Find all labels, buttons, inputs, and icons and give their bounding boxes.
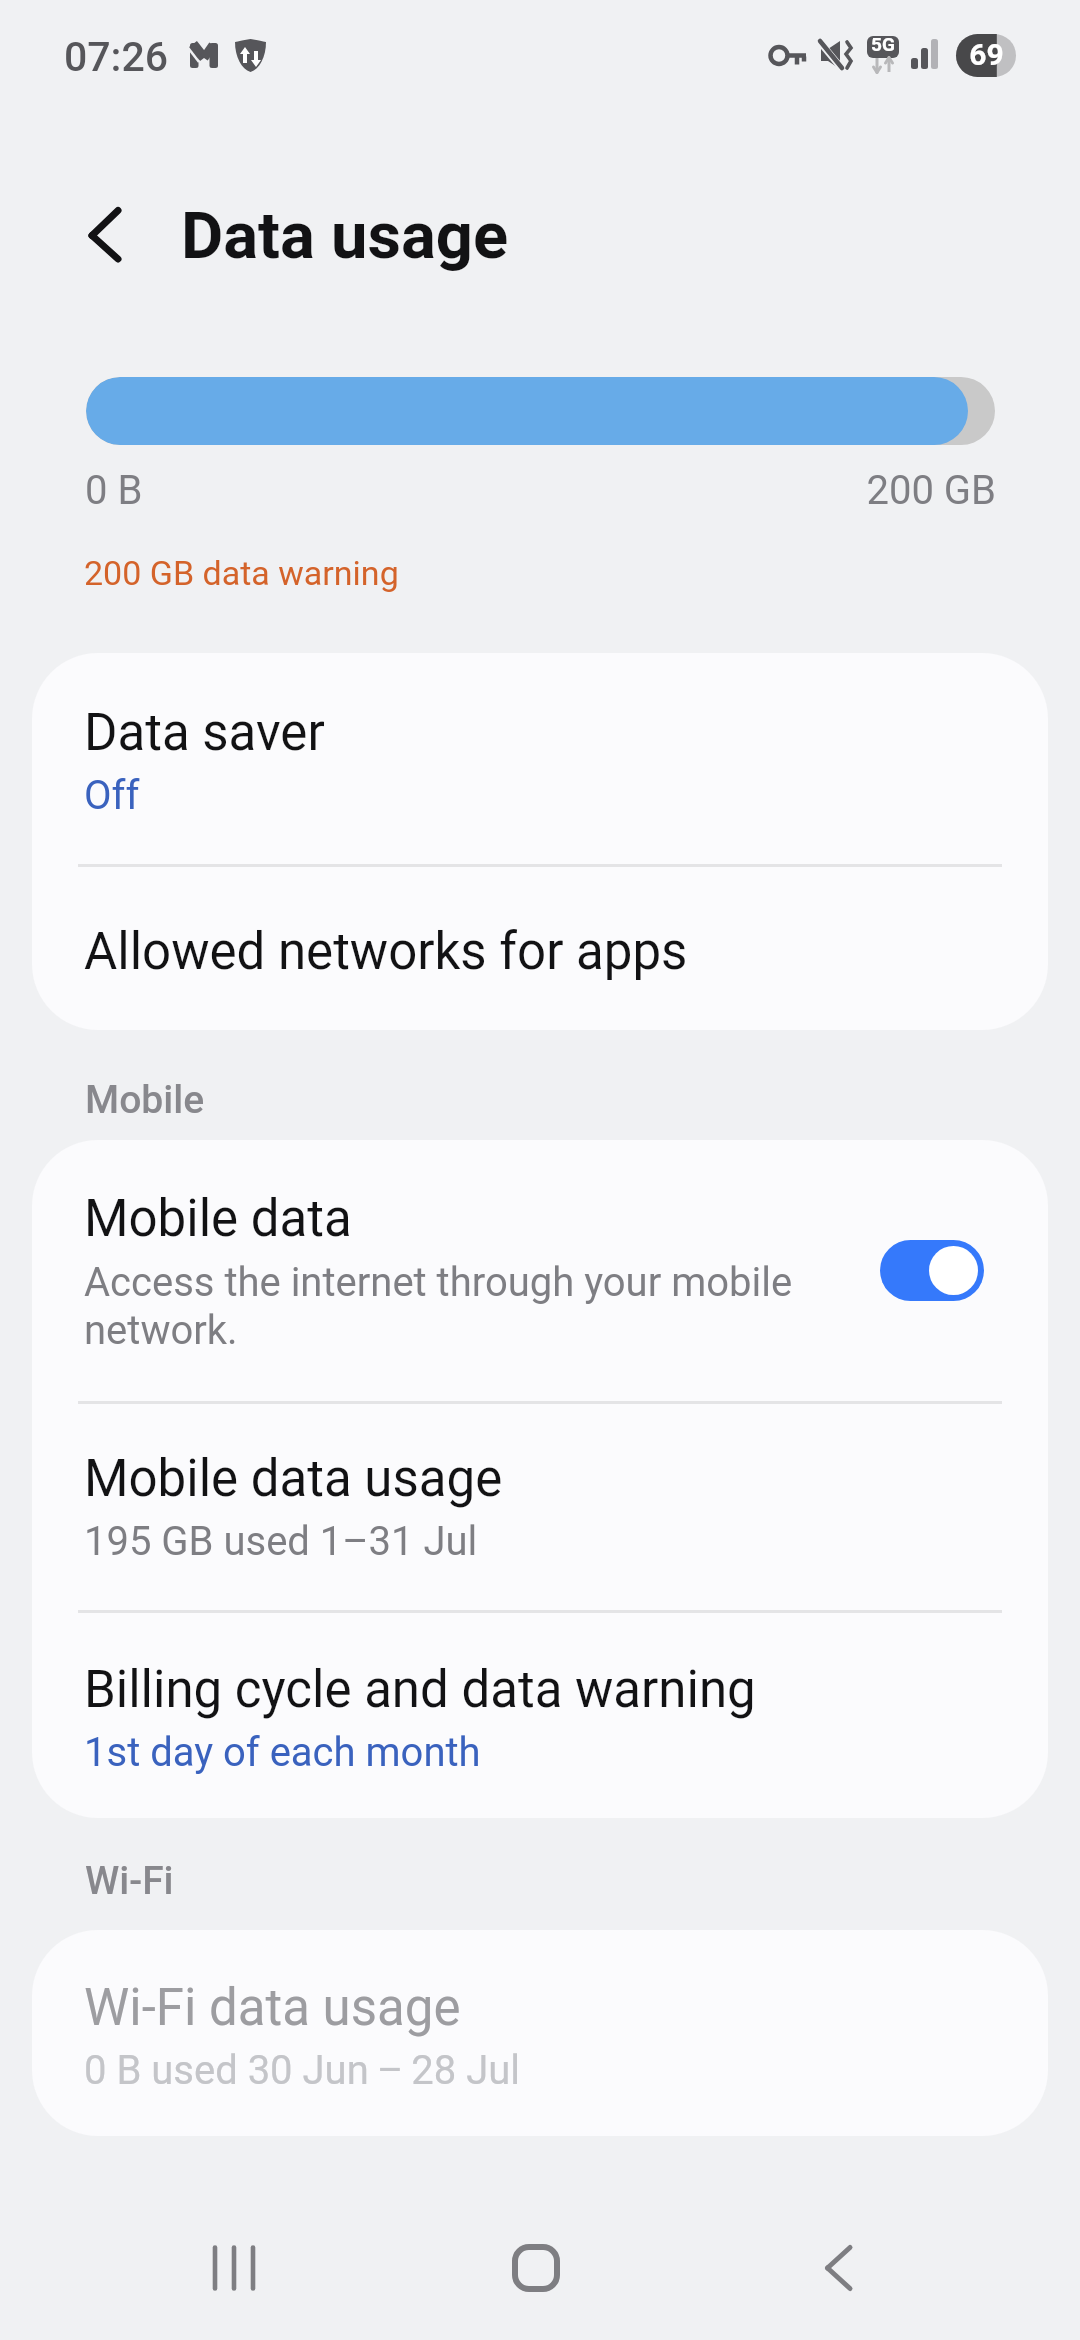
staticText: Access the internet through your mobile … — [84, 1259, 793, 1354]
staticText: 200 GB — [0, 467, 996, 514]
button[interactable]: Data saver — [32, 653, 1048, 864]
staticText: Off — [84, 772, 140, 819]
staticText: Wi-Fi — [85, 1858, 174, 1904]
staticText: Data usage — [181, 198, 509, 274]
button[interactable]: Mobile data — [32, 1140, 1048, 1401]
staticText: Mobile data — [84, 1189, 352, 1249]
staticText: Allowed networks for apps — [84, 922, 688, 982]
staticText: 07:26 — [64, 33, 169, 81]
staticText: 200 GB data warning — [84, 553, 399, 593]
button[interactable]: Recent apps — [172, 2208, 292, 2328]
button[interactable]: Mobile data, on — [880, 1240, 984, 1301]
staticText: 5G — [866, 33, 900, 55]
staticText: 0 B used 30 Jun – 28 Jul — [84, 2047, 521, 2094]
staticText: 1st day of each month — [84, 1729, 481, 1776]
button[interactable]: Mobile data usage — [32, 1404, 1048, 1610]
button[interactable]: Billing cycle and data warning — [32, 1613, 1048, 1818]
staticText: Mobile — [85, 1077, 205, 1123]
button[interactable]: Home — [476, 2208, 596, 2328]
button[interactable]: Allowed networks for apps — [32, 864, 1048, 1030]
staticText: 0 B — [85, 467, 143, 514]
staticText: Billing cycle and data warning — [84, 1660, 756, 1720]
staticText: Mobile data usage — [84, 1449, 503, 1509]
button[interactable]: Navigate up — [58, 192, 152, 286]
button[interactable]: Wi-Fi data usage — [32, 1930, 1048, 2136]
staticText: Data saver — [84, 703, 325, 763]
staticText: 195 GB used 1–31 Jul — [84, 1518, 478, 1565]
staticText: 69 — [957, 37, 1016, 72]
button[interactable]: Back — [778, 2208, 898, 2328]
staticText: Wi-Fi data usage — [84, 1978, 461, 2038]
